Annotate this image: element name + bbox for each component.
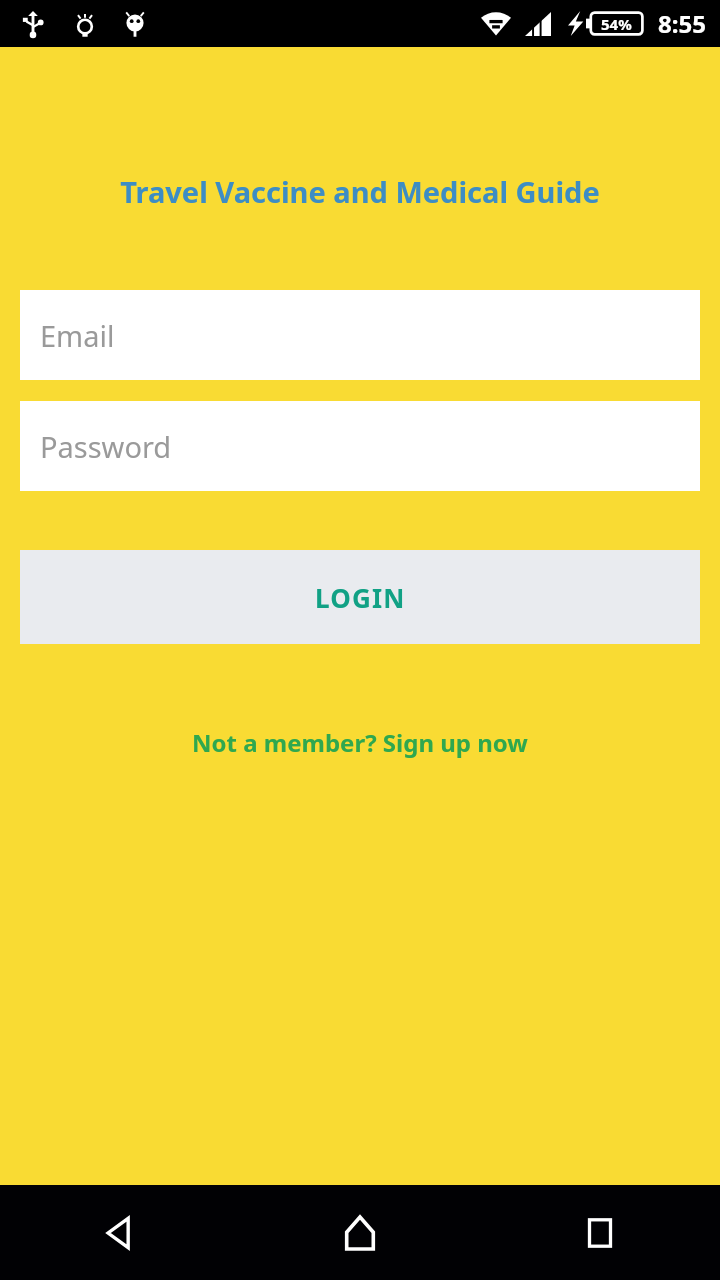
button[interactable]: Not a member? Sign up now bbox=[178, 720, 542, 765]
staticText: Not a member? Sign up now bbox=[192, 726, 528, 759]
button[interactable]: LOGIN bbox=[20, 550, 700, 644]
staticText: 8:55 bbox=[658, 7, 706, 40]
staticText: Password bbox=[40, 427, 172, 466]
button[interactable]: Back bbox=[0, 1185, 240, 1280]
button[interactable]: Recent apps bbox=[480, 1185, 720, 1280]
staticText: LOGIN bbox=[315, 580, 406, 615]
button[interactable]: Home bbox=[240, 1185, 480, 1280]
staticText: Travel Vaccine and Medical Guide bbox=[120, 172, 600, 211]
staticText: 54% bbox=[601, 14, 632, 34]
button[interactable]: Password bbox=[20, 401, 700, 491]
button[interactable]: Email bbox=[20, 290, 700, 380]
staticText: Email bbox=[40, 316, 115, 355]
